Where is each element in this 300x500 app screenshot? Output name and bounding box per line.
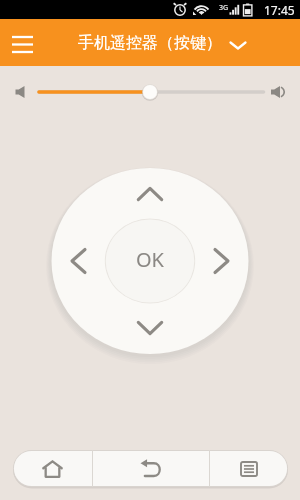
button[interactable]: Up [120, 166, 180, 214]
button[interactable]: Down [120, 308, 180, 356]
staticText: 手机遥控器（按键） [78, 33, 222, 53]
button[interactable]: Right [202, 231, 250, 291]
button[interactable]: Left [50, 231, 98, 291]
button[interactable]: Back [93, 450, 209, 487]
staticText: OK [136, 246, 164, 273]
button[interactable]: Open navigation menu [0, 21, 44, 65]
staticText: 17:45 [264, 2, 295, 18]
staticText: 3G [219, 3, 229, 13]
button[interactable]: List [210, 450, 288, 487]
button[interactable]: Home [13, 450, 92, 487]
button[interactable]: OK [106, 217, 194, 305]
button[interactable]: 手机遥控器（按键） [78, 33, 246, 53]
